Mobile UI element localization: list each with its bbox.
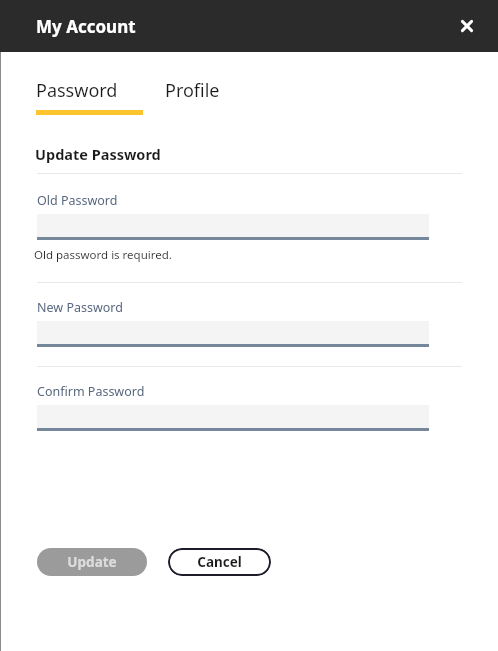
button[interactable] (37, 405, 429, 431)
staticText: Cancel (197, 553, 242, 571)
staticText: Old password is required. (34, 247, 172, 263)
staticText: Update (67, 553, 117, 571)
button[interactable]: Update (37, 548, 147, 576)
staticText: Profile (165, 78, 220, 103)
staticText: Old Password (37, 192, 118, 209)
staticText: Update Password (35, 144, 161, 164)
staticText: Password (36, 78, 118, 103)
button[interactable]: Password (36, 78, 143, 115)
staticText: Confirm Password (37, 383, 145, 400)
button[interactable]: Close (450, 9, 484, 43)
button[interactable] (37, 321, 429, 347)
staticText: New Password (37, 299, 123, 316)
button[interactable]: Cancel (168, 548, 271, 576)
staticText: My Account (36, 15, 136, 38)
button[interactable] (37, 214, 429, 240)
button[interactable]: Profile (163, 78, 222, 103)
